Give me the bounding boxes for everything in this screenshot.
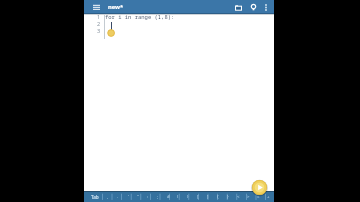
button[interactable]: <	[233, 192, 243, 202]
button[interactable]: )	[183, 192, 193, 202]
staticText: 1	[97, 13, 101, 20]
button[interactable]: >	[243, 192, 253, 202]
button[interactable]	[90, 2, 102, 12]
button[interactable]: }	[223, 192, 233, 202]
staticText: {	[217, 194, 219, 200]
button[interactable]: .	[113, 192, 123, 202]
staticText: :	[147, 194, 149, 200]
staticText: for i in range (1,8):	[105, 13, 175, 20]
button[interactable]: :	[143, 192, 153, 202]
button[interactable]: [	[193, 192, 203, 202]
button[interactable]: ]	[203, 192, 213, 202]
staticText: "	[137, 194, 139, 200]
staticText: new*	[108, 3, 124, 11]
button[interactable]: {	[213, 192, 223, 202]
button[interactable]	[247, 1, 260, 14]
staticText: .	[117, 194, 119, 200]
button[interactable]: ;	[153, 192, 163, 202]
button[interactable]	[261, 2, 271, 12]
staticText: +	[267, 194, 270, 200]
button[interactable]: "	[133, 192, 143, 202]
staticText: ,	[107, 194, 109, 200]
staticText: 3	[97, 27, 101, 34]
button[interactable]: +	[263, 192, 273, 202]
staticText: ]	[207, 194, 209, 200]
button[interactable]: #	[163, 192, 173, 202]
staticText: '	[128, 194, 129, 200]
button[interactable]: '	[123, 192, 133, 202]
staticText: >	[247, 194, 250, 200]
staticText: <	[237, 194, 240, 200]
button[interactable]: (	[173, 192, 183, 202]
staticText: (	[177, 194, 179, 200]
staticText: Tab	[91, 194, 99, 200]
staticText: #	[167, 194, 170, 200]
staticText: ;	[157, 194, 159, 200]
button[interactable]: Tab	[86, 192, 103, 202]
button[interactable]: =	[253, 192, 263, 202]
staticText: [	[197, 194, 199, 200]
button[interactable]	[252, 180, 267, 195]
button[interactable]: ,	[103, 192, 113, 202]
staticText: =	[257, 194, 260, 200]
button[interactable]	[232, 1, 245, 14]
staticText: }	[227, 194, 229, 200]
staticText: 2	[97, 20, 101, 27]
staticText: )	[187, 194, 189, 200]
